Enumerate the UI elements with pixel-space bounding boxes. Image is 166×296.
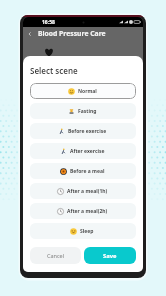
staticText: After exercise bbox=[70, 148, 105, 155]
button[interactable]: Before exercise bbox=[30, 123, 136, 139]
button[interactable]: After a meal(1h) bbox=[30, 183, 136, 199]
button[interactable]: After exercise bbox=[30, 143, 136, 159]
staticText: Blood Pressure Care bbox=[38, 29, 106, 38]
button[interactable]: Back bbox=[26, 30, 34, 38]
staticText: Fasting bbox=[78, 108, 97, 115]
button[interactable]: Save bbox=[84, 247, 136, 264]
button[interactable]: Cancel bbox=[30, 247, 81, 264]
staticText: After a meal(2h) bbox=[67, 208, 108, 215]
staticText: Select scene bbox=[30, 65, 78, 76]
staticText: After a meal(1h) bbox=[67, 188, 108, 195]
staticText: Cancel bbox=[47, 252, 65, 259]
button[interactable]: Fasting bbox=[30, 103, 136, 119]
staticText: Before exercise bbox=[68, 128, 107, 135]
staticText: Before a meal bbox=[70, 168, 105, 175]
staticText: Save bbox=[103, 252, 117, 260]
staticText: 16:58 bbox=[42, 19, 55, 26]
button[interactable]: After a meal(2h) bbox=[30, 203, 136, 219]
button[interactable]: Sleep bbox=[30, 223, 136, 239]
staticText: Sleep bbox=[80, 228, 94, 235]
staticText: Normal bbox=[78, 88, 97, 95]
button[interactable]: Normal bbox=[30, 83, 136, 99]
button[interactable]: Before a meal bbox=[30, 163, 136, 179]
